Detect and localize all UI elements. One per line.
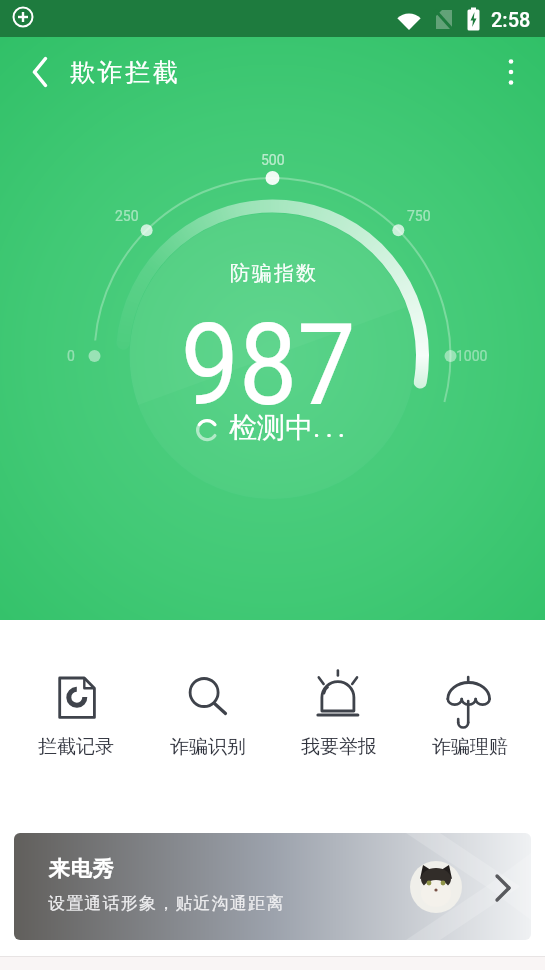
- staticText: 诈骗理赔: [432, 735, 508, 759]
- staticText: 来电秀: [48, 856, 114, 882]
- staticText: 欺诈拦截: [69, 57, 179, 88]
- button[interactable]: 来电秀: [14, 833, 531, 940]
- staticText: 设置通话形象，贴近沟通距离: [48, 893, 285, 914]
- staticText: 987: [181, 298, 356, 418]
- staticText: 拦截记录: [38, 735, 114, 759]
- staticText: 1000: [456, 348, 488, 364]
- button[interactable]: 诈骗识别: [142, 667, 273, 759]
- button[interactable]: 诈骗理赔: [404, 667, 535, 759]
- staticText: 500: [261, 152, 285, 168]
- staticText: 0: [67, 348, 75, 364]
- button[interactable]: 我要举报: [273, 667, 404, 759]
- staticText: 防骗指数: [229, 261, 317, 286]
- staticText: 检测中...: [229, 410, 351, 445]
- staticText: 我要举报: [301, 735, 377, 759]
- staticText: 2:58: [491, 8, 531, 31]
- button[interactable]: 拦截记录: [10, 667, 142, 759]
- staticText: 750: [407, 208, 431, 224]
- staticText: 250: [115, 208, 139, 224]
- button[interactable]: [491, 52, 531, 92]
- staticText: 诈骗识别: [170, 735, 246, 759]
- button[interactable]: [16, 48, 64, 96]
